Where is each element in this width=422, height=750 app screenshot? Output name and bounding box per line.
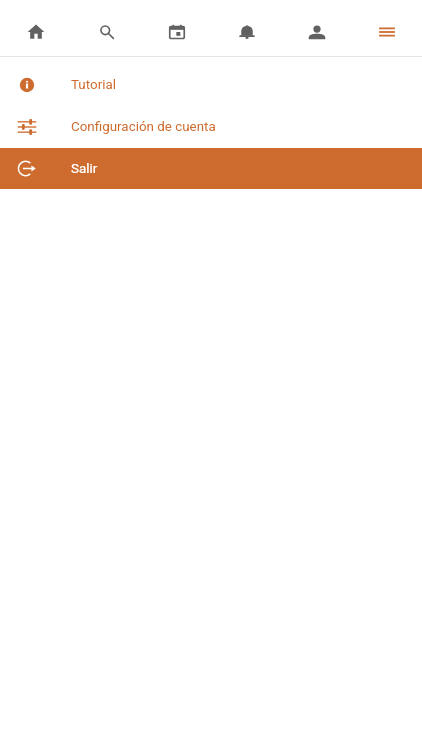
staticText: Tutorial <box>71 77 116 93</box>
staticText: Configuración de cuenta <box>71 119 216 135</box>
button[interactable]: Search <box>71 0 142 63</box>
button[interactable]: Home <box>0 0 71 63</box>
button[interactable]: Configuración de cuenta <box>0 106 422 147</box>
button[interactable]: Tutorial <box>0 64 422 105</box>
staticText: Salir <box>71 161 98 177</box>
button[interactable]: Notifications <box>212 0 282 63</box>
button[interactable]: Profile <box>282 0 352 63</box>
button[interactable]: Calendar <box>142 0 212 63</box>
button[interactable]: Salir <box>0 148 422 189</box>
button[interactable]: Menu <box>352 0 422 63</box>
